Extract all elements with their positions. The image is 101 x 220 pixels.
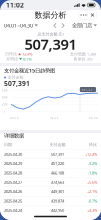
staticText: +4.3% [87, 208, 97, 213]
staticText: 2025-04-27 [4, 179, 22, 185]
staticText: 2025-04-30 [4, 151, 22, 157]
staticText: 442,950 [51, 208, 64, 213]
button[interactable]: 2025-04-26 [0, 187, 101, 196]
button[interactable]: 04.01~04.30 [0, 20, 40, 31]
staticText: +5.6% [87, 179, 97, 185]
button[interactable]: More [79, 11, 88, 19]
staticText: -0.7% [88, 198, 97, 203]
staticText: 40k [2, 96, 7, 99]
button[interactable]: 2025-04-24 [0, 205, 101, 215]
staticText: 20k [2, 103, 7, 106]
staticText: 04.01~04.30 [4, 22, 33, 29]
staticText: 全部门店 [72, 22, 92, 29]
staticText: 507,391 [51, 151, 64, 157]
button[interactable]: 2025-04-29 [0, 159, 101, 168]
staticText: 日期 [4, 142, 12, 147]
staticText: 详细数据 [4, 132, 24, 139]
staticText: 支付笔数 1,284 [70, 51, 96, 57]
staticText: 0 [3, 110, 5, 113]
button[interactable]: 2025-04-30 [0, 149, 101, 159]
staticText: 466,108 [51, 170, 64, 175]
staticText: 507,391 [4, 79, 30, 88]
staticText: 12.4% [22, 51, 32, 57]
staticText: 04.30 [89, 116, 98, 120]
staticText: -1.8% [88, 170, 97, 175]
staticText: 11:02 [6, 1, 24, 9]
staticText: 2025-04-29 [4, 161, 22, 166]
staticText: 支付金额 [8, 75, 24, 80]
button[interactable]: 2025-04-25 [0, 196, 101, 205]
staticText: 2025-04-24 [4, 208, 22, 213]
staticText: 8.1% [23, 56, 31, 62]
staticText: 总支付金额(元) [37, 31, 63, 37]
staticText: -3.2% [88, 161, 97, 166]
staticText: 支付金额 [49, 142, 65, 147]
staticText: 449,301 [51, 189, 64, 194]
staticText: 04.23 [49, 116, 58, 120]
staticText: 环比 [89, 142, 97, 147]
button[interactable]: Close [88, 11, 97, 19]
staticText: 客单价 395 [73, 56, 92, 62]
button[interactable]: Previous period [51, 20, 59, 31]
staticText: 60k [2, 89, 7, 92]
staticText: 04.16 [10, 116, 19, 120]
button[interactable]: 2025-04-27 [0, 177, 101, 187]
button[interactable]: Next period [59, 20, 67, 31]
staticText: 支付金额近15日趋势图 [4, 67, 55, 74]
staticText: 507,391 [24, 34, 76, 54]
staticText: 2025-04-28 [4, 170, 22, 175]
staticText: 451,220 [51, 161, 64, 166]
staticText: +12.4% [85, 151, 97, 157]
staticText: 2025-04-25 [4, 198, 22, 203]
staticText: 数据分析 [34, 10, 66, 20]
button[interactable]: 2025-04-28 [0, 168, 101, 177]
staticText: +2.1% [87, 189, 97, 194]
button[interactable]: 全部门店 [72, 20, 101, 31]
staticText: 439,874 [51, 198, 64, 203]
staticText: 月同比 [6, 56, 18, 61]
staticText: 日环比 [5, 51, 17, 56]
staticText: 474,663 [51, 179, 64, 185]
staticText: 2025-04-26 [4, 189, 22, 194]
staticText: 507,391 [81, 88, 94, 91]
